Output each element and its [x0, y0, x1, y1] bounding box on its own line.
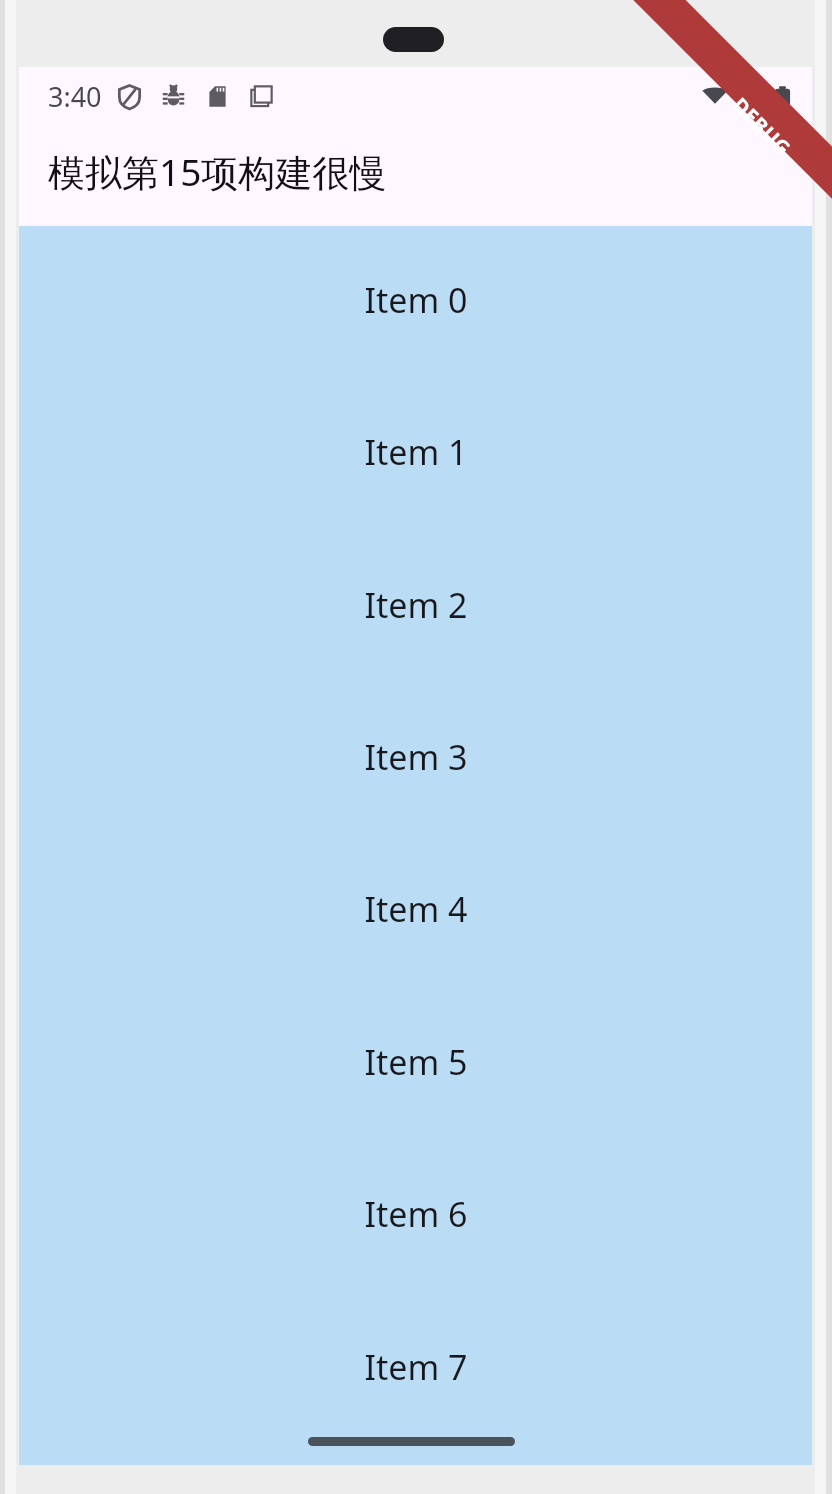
staticText: Item 1: [364, 429, 468, 475]
staticText: Item 7: [364, 1344, 468, 1390]
button[interactable]: Item 8: [19, 1443, 812, 1494]
staticText: Item 3: [364, 734, 468, 780]
button[interactable]: Item 4: [19, 833, 812, 985]
button[interactable]: Item 6: [19, 1138, 812, 1290]
staticText: 3:40: [48, 78, 102, 115]
button[interactable]: Item 1: [19, 376, 812, 528]
staticText: Item 4: [364, 886, 468, 932]
button[interactable]: Item 7: [19, 1291, 812, 1443]
staticText: 模拟第15项构建很慢: [48, 146, 387, 197]
staticText: Item 6: [364, 1191, 468, 1237]
staticText: Item 0: [364, 277, 468, 323]
staticText: Item 5: [364, 1039, 468, 1085]
button[interactable]: Item 3: [19, 681, 812, 833]
button[interactable]: Item 2: [19, 529, 812, 681]
staticText: Item 2: [364, 582, 468, 628]
other: Debug banner: [662, 67, 812, 217]
button[interactable]: Item 0: [19, 224, 812, 376]
button[interactable]: Item 5: [19, 986, 812, 1138]
staticText: DEBUG: [727, 91, 797, 161]
